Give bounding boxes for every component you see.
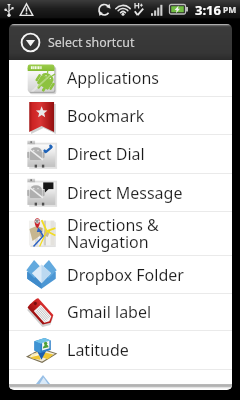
staticText: Gmail label <box>67 301 152 323</box>
button[interactable] <box>9 370 232 384</box>
button[interactable]: Bookmark <box>9 97 232 134</box>
staticText: Latitude <box>67 339 129 361</box>
staticText: 3:16 <box>195 1 221 19</box>
staticText: PM <box>223 4 237 16</box>
staticText: Select shortcut <box>48 34 135 51</box>
button[interactable]: Gmail label <box>9 294 232 330</box>
staticText: Direct Message <box>67 182 183 204</box>
button[interactable]: Applications <box>9 60 232 96</box>
button[interactable]: Direct Message <box>9 174 232 211</box>
button[interactable]: Direct Dial <box>9 135 232 173</box>
staticText: Dropbox Folder <box>67 264 184 286</box>
button[interactable]: Select shortcut <box>9 24 232 60</box>
button[interactable]: Dropbox Folder <box>9 256 232 293</box>
staticText: Applications <box>67 67 159 89</box>
button[interactable]: Latitude <box>9 331 232 369</box>
staticText: Bookmark <box>67 105 145 127</box>
staticText: Direct Dial <box>67 143 145 165</box>
button[interactable]: Directions & Navigation <box>9 212 232 255</box>
staticText: Directions & Navigation <box>67 214 159 253</box>
